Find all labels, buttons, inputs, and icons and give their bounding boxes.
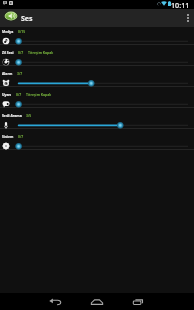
staticText: Alarm: [2, 71, 13, 76]
staticText: 0/15: [18, 29, 26, 34]
button[interactable]: Navigate up: [0, 9, 194, 27]
button[interactable]: Recent apps: [125, 293, 151, 310]
button[interactable]: Back: [42, 293, 68, 310]
button[interactable]: More options: [181, 9, 194, 27]
staticText: Uyarı: [2, 92, 12, 97]
staticText: Zil Sesi: [2, 50, 14, 55]
staticText: 3/5: [26, 113, 32, 118]
staticText: Sesli Arama: [2, 113, 22, 118]
button[interactable]: Sesli Arama: [0, 108, 194, 129]
staticText: Sistem: [2, 134, 14, 139]
staticText: 3/7: [17, 71, 23, 76]
staticText: Titreşim Kapalı: [26, 92, 52, 97]
button[interactable]: Uyarı: [0, 87, 194, 108]
staticText: 0/7: [18, 134, 24, 139]
button[interactable]: Home: [84, 293, 110, 310]
staticText: Titreşim Kapalı: [28, 50, 54, 55]
staticText: 0/7: [18, 50, 24, 55]
button[interactable]: Alarm: [0, 66, 194, 87]
button[interactable]: Sistem: [0, 129, 194, 150]
staticText: Medya: [2, 29, 14, 34]
staticText: Ses: [21, 14, 33, 24]
button[interactable]: Zil Sesi: [0, 45, 194, 66]
staticText: 0/7: [16, 92, 22, 97]
button[interactable]: Medya: [0, 24, 194, 45]
staticText: 10:11: [171, 0, 190, 9]
